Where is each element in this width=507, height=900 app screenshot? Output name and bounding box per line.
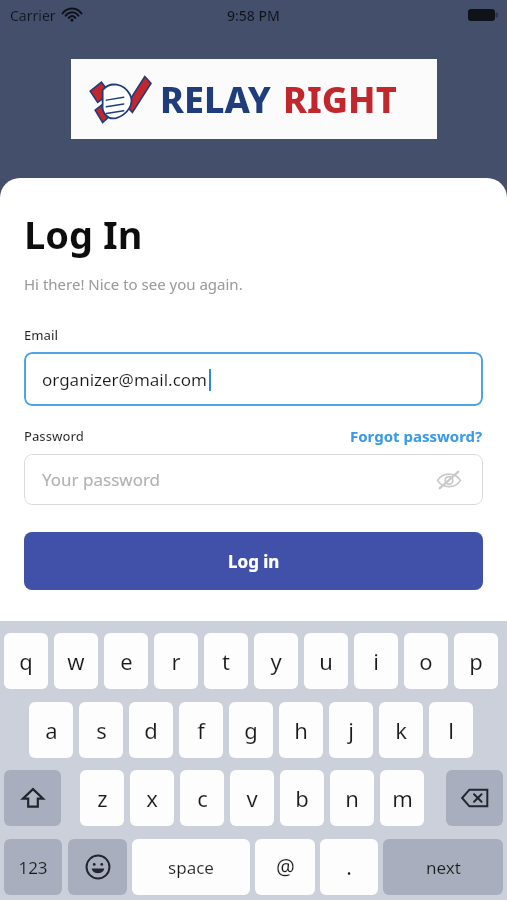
button[interactable]: r bbox=[154, 633, 198, 689]
button[interactable]: j bbox=[329, 702, 373, 758]
staticText: Forgot password? bbox=[350, 426, 483, 446]
button[interactable]: Backspace bbox=[446, 770, 503, 826]
staticText: t bbox=[222, 646, 230, 676]
button[interactable]: n bbox=[330, 770, 374, 826]
staticText: u bbox=[319, 646, 333, 676]
staticText: a bbox=[45, 715, 58, 745]
button[interactable]: Show password bbox=[433, 464, 465, 496]
button[interactable]: 123 bbox=[4, 839, 62, 895]
button[interactable]: Forgot password? bbox=[350, 426, 483, 446]
button[interactable]: h bbox=[279, 702, 323, 758]
staticText: d bbox=[144, 715, 158, 745]
staticText: o bbox=[419, 646, 433, 676]
button[interactable]: organizer@mail.com bbox=[24, 352, 483, 406]
button[interactable]: z bbox=[80, 770, 124, 826]
staticText: s bbox=[96, 715, 107, 745]
staticText: q bbox=[19, 646, 33, 676]
button[interactable]: d bbox=[129, 702, 173, 758]
button[interactable]: f bbox=[179, 702, 223, 758]
staticText: space bbox=[168, 856, 214, 879]
button[interactable]: y bbox=[254, 633, 298, 689]
button[interactable]: space bbox=[132, 839, 250, 895]
button[interactable]: c bbox=[180, 770, 224, 826]
button[interactable]: @ bbox=[255, 839, 315, 895]
button[interactable]: s bbox=[79, 702, 123, 758]
button[interactable]: a bbox=[29, 702, 73, 758]
staticText: Log in bbox=[228, 550, 280, 573]
staticText: e bbox=[120, 646, 133, 676]
staticText: n bbox=[345, 783, 359, 813]
staticText: Email bbox=[24, 326, 59, 344]
button[interactable]: Shift bbox=[4, 770, 61, 826]
staticText: p bbox=[469, 646, 483, 676]
button[interactable]: m bbox=[380, 770, 424, 826]
staticText: h bbox=[294, 715, 308, 745]
staticText: b bbox=[295, 783, 309, 813]
staticText: x bbox=[146, 783, 158, 813]
button[interactable]: Emoji bbox=[68, 839, 127, 895]
button[interactable]: o bbox=[404, 633, 448, 689]
staticText: j bbox=[348, 715, 354, 745]
button[interactable]: g bbox=[229, 702, 273, 758]
staticText: y bbox=[270, 646, 282, 676]
button[interactable]: e bbox=[104, 633, 148, 689]
button[interactable]: Your password bbox=[24, 454, 483, 505]
button[interactable]: p bbox=[454, 633, 498, 689]
staticText: g bbox=[244, 715, 258, 745]
button[interactable]: next bbox=[383, 839, 503, 895]
staticText: w bbox=[67, 646, 85, 676]
button[interactable]: t bbox=[204, 633, 248, 689]
staticText: z bbox=[97, 783, 108, 813]
button[interactable]: b bbox=[280, 770, 324, 826]
button[interactable]: v bbox=[230, 770, 274, 826]
button[interactable]: k bbox=[379, 702, 423, 758]
staticText: v bbox=[246, 783, 258, 813]
button[interactable]: Log in bbox=[24, 532, 483, 590]
staticText: m bbox=[392, 783, 413, 813]
staticText: Hi there! Nice to see you again. bbox=[24, 274, 243, 294]
button[interactable]: q bbox=[4, 633, 48, 689]
staticText: Log In bbox=[24, 208, 143, 260]
button[interactable]: i bbox=[354, 633, 398, 689]
staticText: r bbox=[171, 646, 181, 676]
staticText: . bbox=[346, 853, 352, 882]
staticText: f bbox=[197, 715, 205, 745]
staticText: next bbox=[426, 856, 461, 879]
staticText: i bbox=[373, 646, 379, 676]
button[interactable]: l bbox=[429, 702, 473, 758]
staticText: organizer@mail.com bbox=[42, 368, 208, 391]
staticText: Password bbox=[24, 427, 84, 445]
button[interactable]: w bbox=[54, 633, 98, 689]
staticText: c bbox=[197, 783, 208, 813]
staticText: RIGHT bbox=[283, 75, 397, 124]
button[interactable]: x bbox=[130, 770, 174, 826]
staticText: Your password bbox=[42, 468, 161, 491]
button[interactable]: . bbox=[320, 839, 378, 895]
staticText: @ bbox=[276, 853, 295, 882]
button[interactable]: u bbox=[304, 633, 348, 689]
staticText: 123 bbox=[18, 856, 48, 879]
staticText: RELAY bbox=[160, 75, 271, 124]
staticText: Carrier bbox=[10, 6, 56, 25]
staticText: l bbox=[448, 715, 454, 745]
staticText: k bbox=[395, 715, 407, 745]
staticText: 9:58 PM bbox=[227, 6, 280, 25]
